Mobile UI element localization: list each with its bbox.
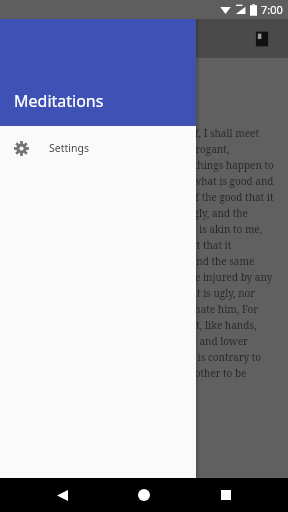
button[interactable]: Share: [250, 474, 282, 506]
button[interactable]: Back: [42, 478, 82, 512]
button[interactable]: Bookmark: [218, 474, 250, 506]
button[interactable]: Recent apps: [206, 478, 246, 512]
button[interactable]: Settings: [0, 126, 196, 170]
staticText: Begin the morning by saying to thyself, …: [16, 126, 274, 396]
button[interactable]: Chapters: [244, 21, 280, 57]
button[interactable]: Home: [124, 478, 164, 512]
staticText: Meditations: [14, 90, 104, 112]
staticText: Settings: [49, 141, 89, 155]
staticText: 7:00: [261, 2, 283, 17]
